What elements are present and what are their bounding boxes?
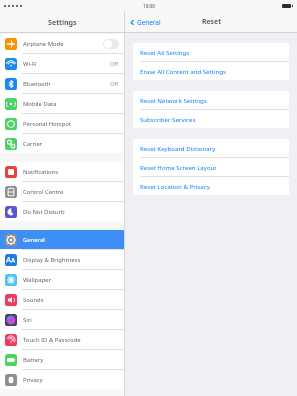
staticText: Off [110, 80, 119, 88]
button[interactable]: Mobile Data [0, 94, 124, 113]
staticText: Siri [23, 316, 32, 324]
button[interactable]: Privacy [0, 370, 124, 389]
button[interactable]: Airplane Mode [0, 34, 124, 53]
button[interactable]: Battery [0, 350, 124, 369]
staticText: Reset [202, 17, 221, 27]
staticText: Mobile Data [23, 100, 57, 108]
button[interactable]: Carrier [0, 134, 124, 153]
staticText: 10:00 [143, 3, 155, 9]
staticText: Settings [48, 17, 77, 27]
staticText: Reset Home Screen Layout [140, 163, 217, 171]
staticText: Privacy [23, 376, 43, 384]
button[interactable]: Back to General [129, 18, 161, 27]
button[interactable]: Subscriber Services [133, 110, 289, 128]
staticText: Carrier [23, 140, 43, 148]
staticText: General [137, 18, 161, 27]
button[interactable]: Reset All Settings [133, 43, 289, 61]
other: Back to General [129, 19, 136, 26]
staticText: Sounds [23, 296, 44, 304]
button[interactable]: Notifications [0, 162, 124, 181]
button[interactable]: Wi-Fi [0, 54, 124, 73]
staticText: Reset Location & Privacy [140, 182, 210, 190]
button[interactable]: Touch ID & Passcode [0, 330, 124, 349]
button[interactable]: Reset Home Screen Layout [133, 158, 289, 176]
button[interactable]: Airplane Mode toggle [103, 39, 119, 49]
staticText: Reset All Settings [140, 48, 190, 56]
button[interactable]: Wallpaper [0, 270, 124, 289]
button[interactable]: Reset Location & Privacy [133, 177, 289, 195]
staticText: Reset Keyboard Dictionary [140, 144, 216, 152]
staticText: Bluetooth [23, 80, 51, 88]
staticText: General [23, 236, 45, 244]
staticText: Display & Brightness [23, 256, 81, 264]
staticText: Airplane Mode [23, 40, 64, 48]
button[interactable]: Personal Hotspot [0, 114, 124, 133]
button[interactable]: Control Centre [0, 182, 124, 201]
button[interactable]: Sounds [0, 290, 124, 309]
staticText: Wi-Fi [23, 60, 37, 68]
staticText: Control Centre [23, 188, 64, 196]
button[interactable]: Siri [0, 310, 124, 329]
staticText: Personal Hotspot [23, 120, 71, 128]
staticText: Notifications [23, 168, 59, 176]
button[interactable]: Bluetooth [0, 74, 124, 93]
staticText: Subscriber Services [140, 115, 196, 123]
staticText: Do Not Disturb [23, 208, 65, 216]
staticText: Off [110, 60, 119, 68]
button[interactable]: Do Not Disturb [0, 202, 124, 221]
button[interactable]: Reset Network Settings [133, 91, 289, 109]
button[interactable]: Display & Brightness [0, 250, 124, 269]
staticText: Touch ID & Passcode [23, 336, 81, 344]
staticText: Reset Network Settings [140, 96, 207, 104]
staticText: Erase All Content and Settings [140, 67, 226, 75]
staticText: Wallpaper [23, 276, 52, 284]
button[interactable]: Reset Keyboard Dictionary [133, 139, 289, 157]
button[interactable]: General [0, 230, 124, 249]
staticText: Battery [23, 356, 44, 364]
button[interactable]: Erase All Content and Settings [133, 62, 289, 80]
